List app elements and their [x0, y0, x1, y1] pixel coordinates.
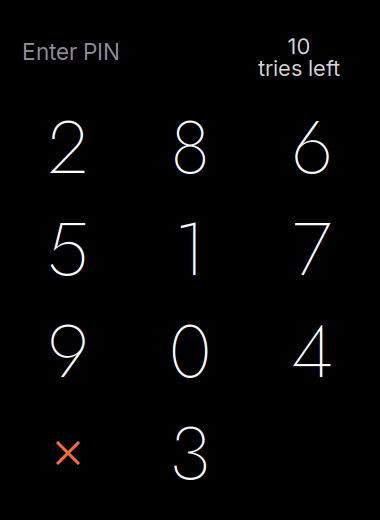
staticText: 0: [169, 297, 211, 405]
button[interactable]: 0: [129, 300, 251, 402]
button[interactable]: 9: [7, 300, 129, 402]
button[interactable]: Cancel: [7, 402, 129, 504]
staticText: 9: [47, 297, 88, 405]
button[interactable]: 4: [251, 300, 373, 402]
staticText: 1: [174, 195, 206, 303]
button[interactable]: 7: [251, 198, 373, 300]
button[interactable]: 6: [251, 96, 373, 198]
staticText: 2: [48, 93, 88, 201]
staticText: 3: [169, 399, 210, 507]
button[interactable]: 8: [129, 96, 251, 198]
button[interactable]: 2: [7, 96, 129, 198]
staticText: 4: [291, 297, 333, 405]
staticText: 10: [287, 33, 310, 60]
staticText: 6: [291, 93, 332, 201]
button[interactable]: 5: [7, 198, 129, 300]
staticText: 8: [170, 93, 209, 201]
staticText: tries left: [258, 55, 340, 81]
staticText: 5: [47, 195, 89, 303]
button[interactable]: 3: [129, 402, 251, 504]
staticText: Enter PIN: [22, 38, 120, 65]
staticText: 7: [292, 195, 331, 303]
button[interactable]: 1: [129, 198, 251, 300]
